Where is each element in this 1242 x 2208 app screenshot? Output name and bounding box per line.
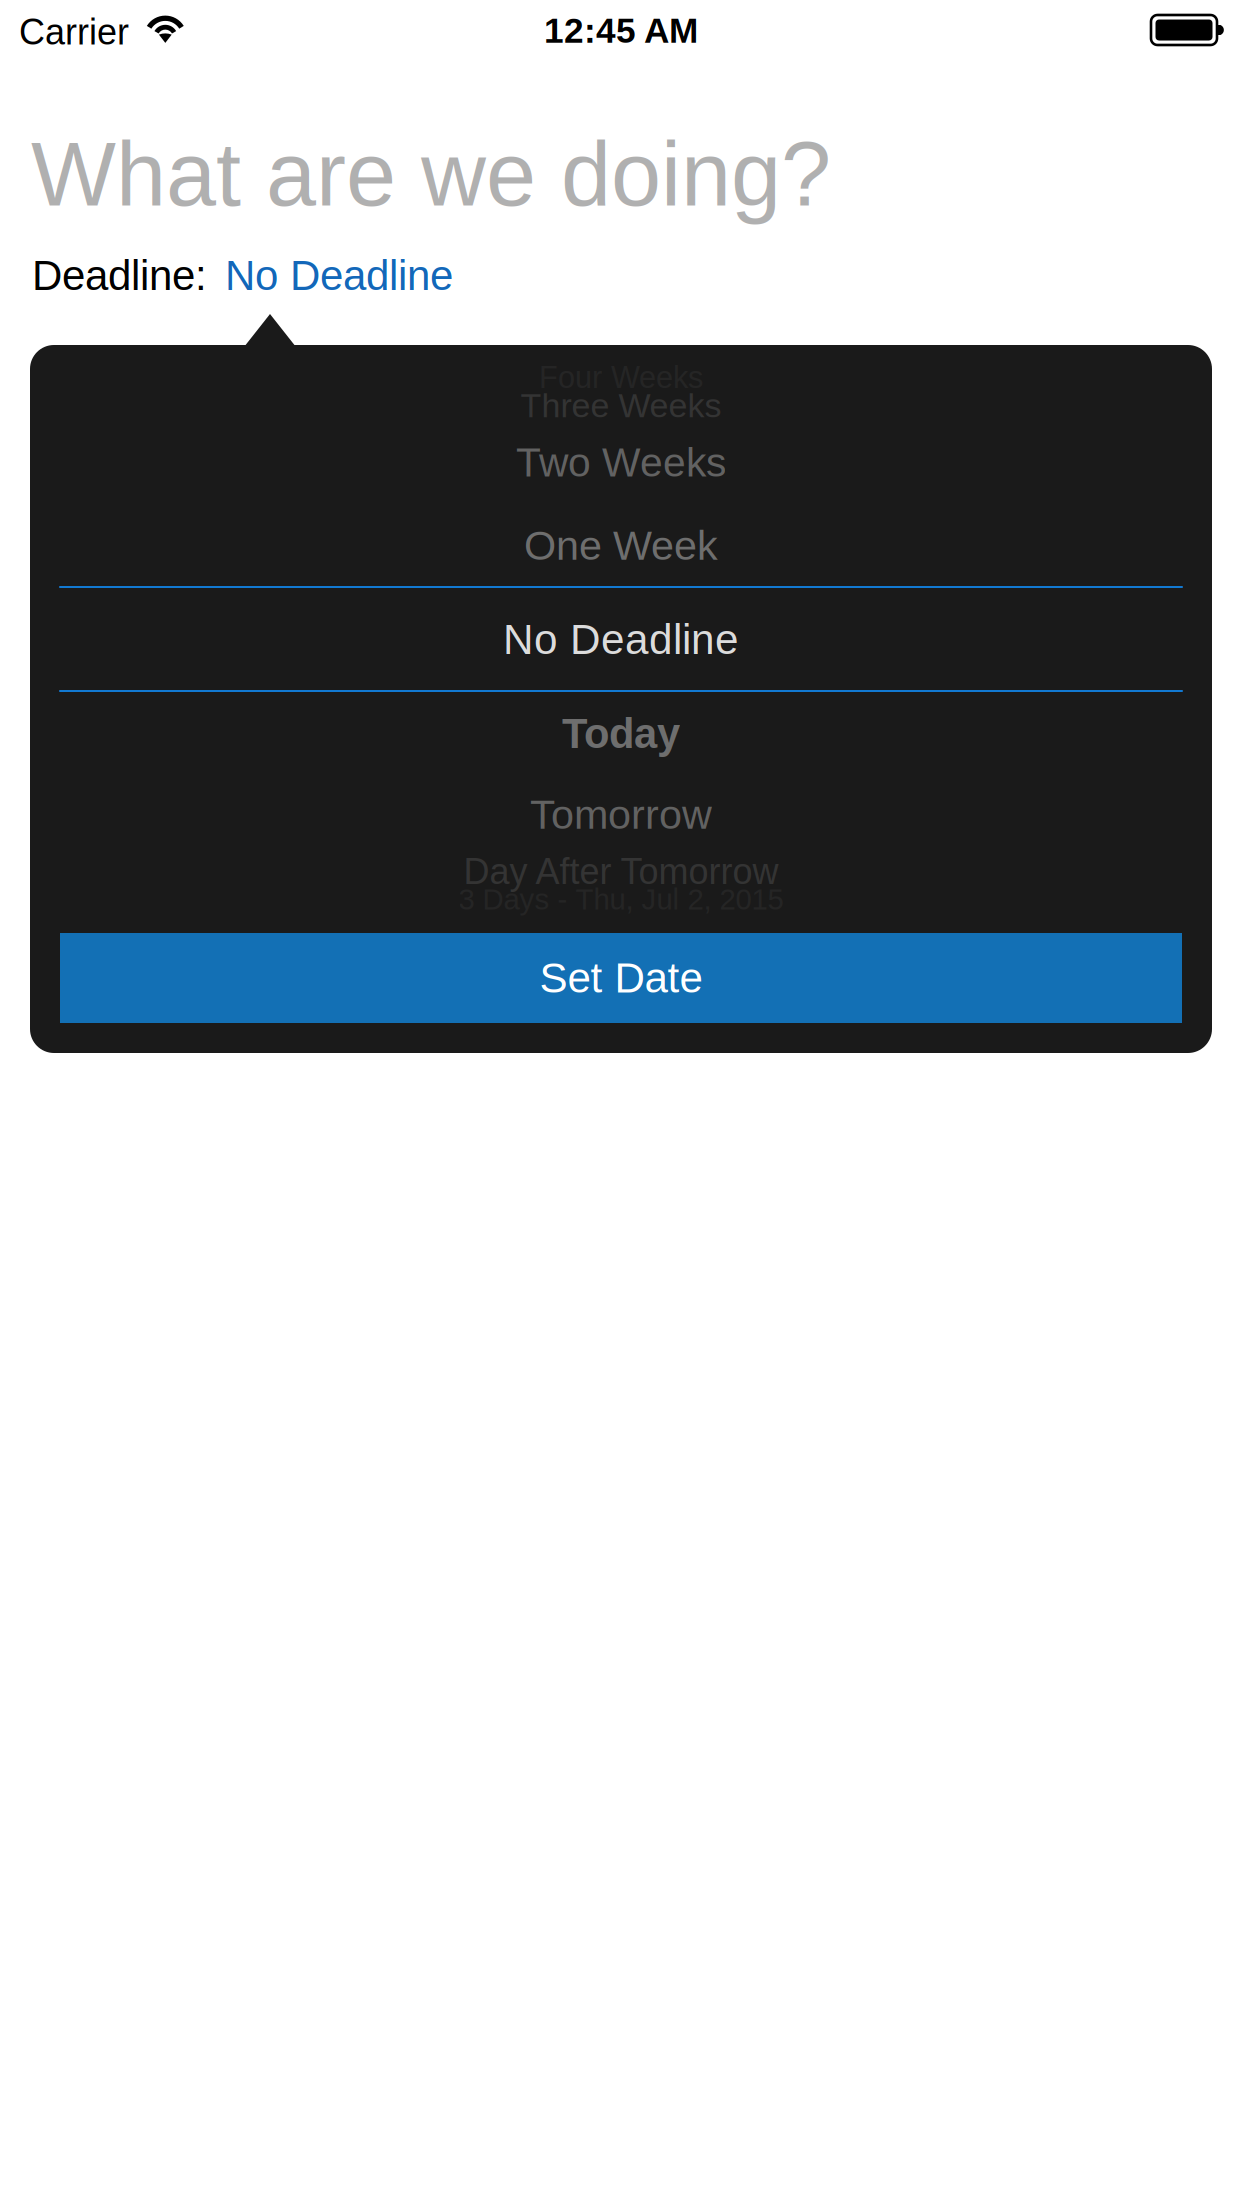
button[interactable]: 3 Days - Thu, Jul 2, 2015 xyxy=(458,883,783,916)
staticText: Deadline: xyxy=(32,252,207,299)
staticText: Today xyxy=(562,710,680,757)
staticText: No Deadline xyxy=(225,252,453,299)
staticText: Set Date xyxy=(539,954,702,1002)
button[interactable]: Two Weeks xyxy=(516,440,726,485)
staticText: Tomorrow xyxy=(530,791,712,838)
button[interactable]: Set Date xyxy=(60,933,1182,1023)
staticText: Day After Tomorrow xyxy=(463,851,778,891)
staticText: Three Weeks xyxy=(520,386,721,424)
staticText: Carrier xyxy=(19,12,129,52)
button[interactable]: No Deadline xyxy=(503,616,739,663)
button[interactable]: Day After Tomorrow xyxy=(463,851,778,891)
staticText: Four Weeks xyxy=(539,360,703,394)
staticText: 3 Days - Thu, Jul 2, 2015 xyxy=(458,883,783,916)
button[interactable]: One Week xyxy=(524,522,718,569)
button[interactable]: Deadline: xyxy=(32,252,453,299)
button[interactable]: Three Weeks xyxy=(520,386,721,424)
staticText: 12:45 AM xyxy=(544,11,698,50)
staticText: What are we doing? xyxy=(31,124,831,224)
button[interactable]: Today xyxy=(562,710,680,757)
staticText: Two Weeks xyxy=(516,440,726,485)
staticText: One Week xyxy=(524,522,718,569)
staticText: No Deadline xyxy=(503,616,739,663)
button[interactable]: Tomorrow xyxy=(530,791,712,838)
button[interactable]: Four Weeks xyxy=(539,360,703,394)
